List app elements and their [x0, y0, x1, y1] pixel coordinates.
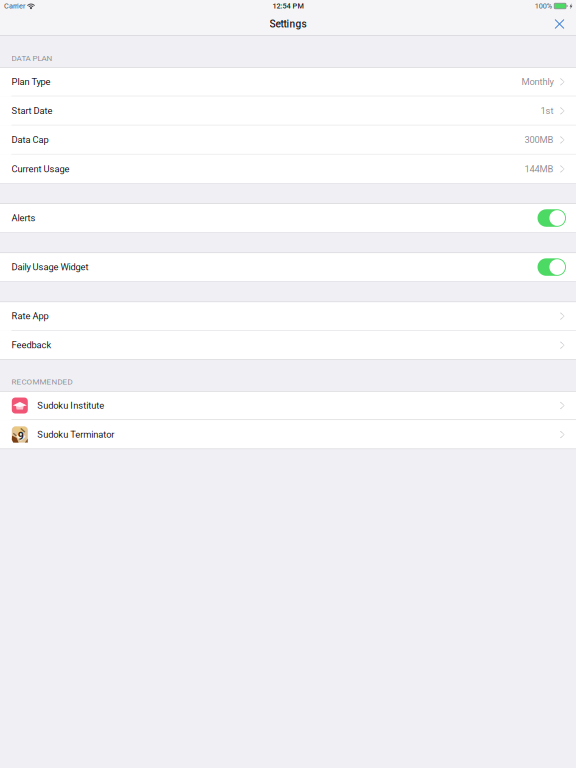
staticText: Start Date — [11, 105, 52, 116]
staticText: Settings — [269, 18, 306, 30]
button[interactable]: Current Usage — [0, 154, 576, 183]
staticText: Sudoku Institute — [37, 400, 104, 411]
staticText: Feedback — [11, 340, 51, 351]
staticText: Carrier — [4, 2, 25, 10]
button[interactable]: 9 — [0, 420, 576, 449]
staticText: 12:54 PM — [272, 2, 303, 10]
staticText: Rate App — [11, 311, 48, 322]
button[interactable]: Data Cap — [0, 125, 576, 154]
staticText: Monthly — [522, 76, 554, 87]
button[interactable]: Start Date — [0, 96, 576, 125]
button[interactable]: Sudoku Institute — [0, 391, 576, 420]
button[interactable]: Plan Type — [0, 67, 576, 96]
staticText: Plan Type — [11, 76, 50, 87]
button[interactable]: Alerts — [537, 209, 566, 227]
staticText: 1st — [541, 105, 554, 116]
staticText: 9 — [18, 430, 24, 442]
staticText: 144MB — [525, 163, 554, 174]
staticText: DATA PLAN — [11, 53, 52, 63]
button[interactable]: Rate App — [0, 302, 576, 331]
staticText: Data Cap — [11, 134, 48, 145]
staticText: RECOMMENDED — [11, 377, 72, 387]
staticText: 300MB — [525, 134, 554, 145]
staticText: Daily Usage Widget — [11, 262, 88, 272]
staticText: 100% — [535, 2, 552, 10]
button[interactable]: Feedback — [0, 331, 576, 360]
staticText: Alerts — [11, 213, 35, 223]
staticText: Sudoku Terminator — [37, 429, 114, 440]
button[interactable]: Daily Usage Widget — [537, 258, 566, 276]
button[interactable]: Close — [547, 13, 576, 35]
staticText: Current Usage — [11, 163, 69, 174]
